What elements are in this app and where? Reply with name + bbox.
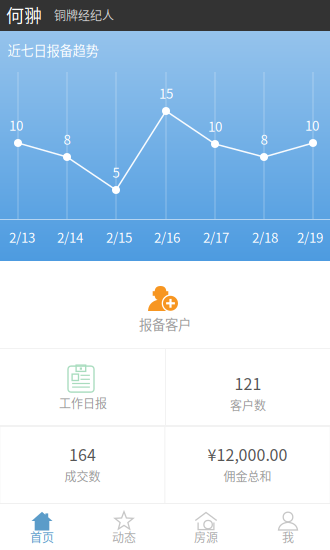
button[interactable]: 121 [166,349,330,425]
button[interactable]: 工作日报 [0,349,165,425]
staticText: 佣金总和 [223,467,271,485]
button[interactable]: 报备客户 [0,261,330,348]
staticText: 报备客户 [139,314,191,334]
staticText: 客户数 [230,396,266,414]
staticText: 8 [260,129,267,149]
button[interactable]: 我 [247,504,329,550]
staticText: 2/14 [57,227,83,247]
staticText: 2/13 [9,227,35,247]
staticText: 15 [159,83,173,103]
staticText: 房源 [194,528,218,546]
button[interactable]: ¥12,000.00 [165,427,329,503]
staticText: 动态 [112,528,136,546]
staticText: 2/15 [106,227,132,247]
staticText: 工作日报 [59,394,107,412]
staticText: 2/17 [203,227,229,247]
staticText: 何翀 [6,2,42,28]
staticText: 我 [282,528,294,546]
staticText: 铜牌经纪人 [54,6,114,24]
button[interactable]: 动态 [83,504,165,550]
staticText: 5 [112,162,119,182]
staticText: 首页 [30,528,54,546]
staticText: 2/16 [154,227,180,247]
staticText: 10 [208,116,222,136]
staticText: ¥12,000.00 [207,442,287,466]
staticText: 10 [9,115,23,135]
button[interactable]: 首页 [1,504,83,550]
staticText: 121 [234,371,261,395]
button[interactable]: 164 [0,427,164,503]
staticText: 2/18 [252,227,278,247]
button[interactable]: 房源 [165,504,247,550]
staticText: 2/19 [297,227,323,247]
staticText: 近七日报备趋势 [7,40,98,60]
staticText: 成交数 [64,467,100,485]
staticText: 164 [69,442,96,466]
staticText: 10 [305,115,319,135]
staticText: 8 [63,129,70,149]
